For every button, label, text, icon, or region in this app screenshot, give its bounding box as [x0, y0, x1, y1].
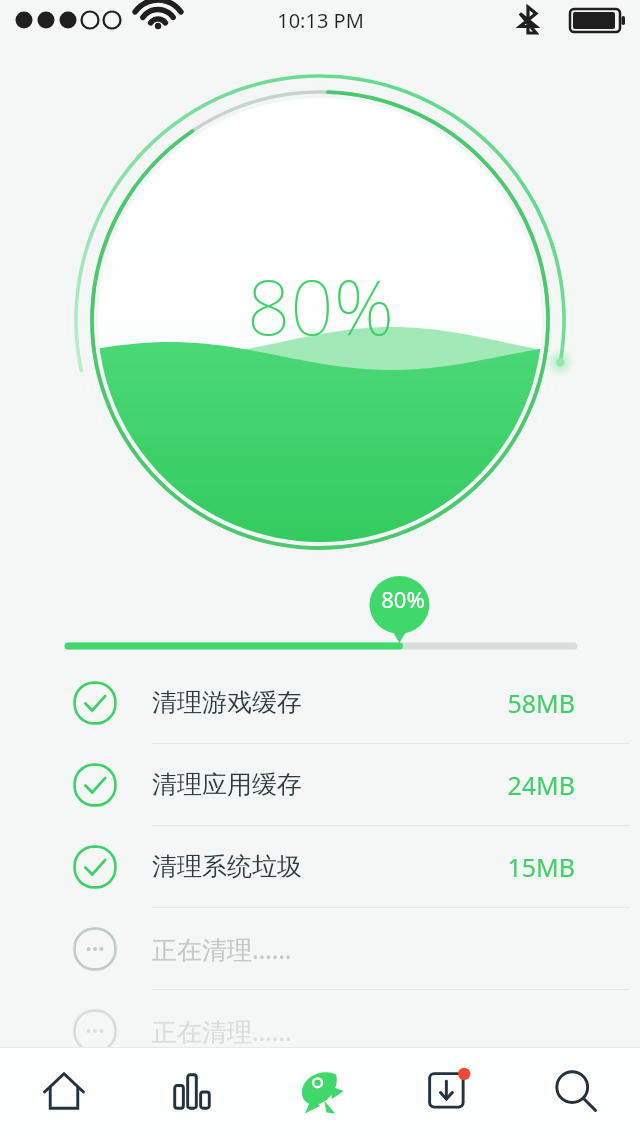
- button[interactable]: Home: [0, 1048, 128, 1136]
- staticText: 58MB: [507, 686, 575, 720]
- button[interactable]: 清理系统垃圾: [0, 826, 640, 908]
- button[interactable]: Search: [512, 1048, 640, 1136]
- staticText: 80%: [381, 584, 425, 614]
- staticText: 正在清理……: [152, 932, 292, 966]
- staticText: 15MB: [507, 850, 575, 884]
- staticText: 24MB: [507, 768, 575, 802]
- button[interactable]: 正在清理……: [0, 990, 640, 1071]
- button[interactable]: 正在清理……: [0, 908, 640, 990]
- button[interactable]: 清理应用缓存: [0, 744, 640, 826]
- staticText: 80%: [247, 254, 394, 358]
- staticText: 清理应用缓存: [152, 769, 302, 800]
- staticText: 清理游戏缓存: [152, 687, 302, 718]
- button[interactable]: 清理游戏缓存: [0, 662, 640, 744]
- button[interactable]: Downloads: [384, 1048, 512, 1136]
- button[interactable]: Boost: [256, 1048, 384, 1136]
- staticText: 10:13 PM: [277, 7, 364, 34]
- staticText: 清理系统垃圾: [152, 851, 302, 882]
- button[interactable]: Statistics: [128, 1048, 256, 1136]
- staticText: 正在清理……: [152, 1014, 292, 1048]
